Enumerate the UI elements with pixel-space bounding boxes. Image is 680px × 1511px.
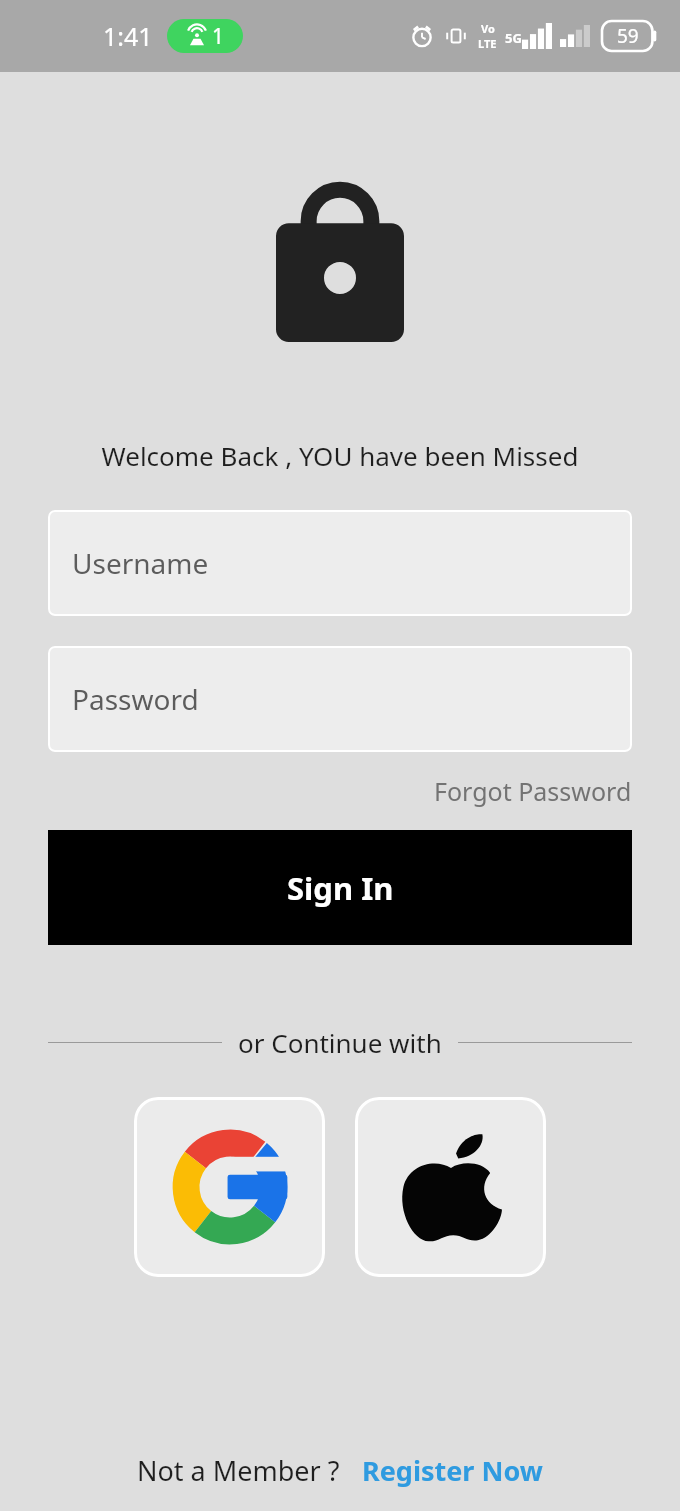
staticText: Vo <box>481 21 495 36</box>
staticText: Password <box>72 680 199 718</box>
staticText: Welcome Back , YOU have been Missed <box>0 438 680 473</box>
button[interactable]: Sign In <box>48 830 632 945</box>
button[interactable]: Register Now <box>362 1452 543 1489</box>
staticText: 59 <box>617 23 639 49</box>
staticText: LTE <box>478 36 497 51</box>
staticText: 1 <box>212 22 225 51</box>
button[interactable]: Username <box>48 510 632 616</box>
staticText: Sign In <box>287 867 394 909</box>
button[interactable]: Sign in with Apple <box>355 1097 546 1277</box>
staticText: Register Now <box>362 1452 543 1489</box>
staticText: 5G <box>505 29 522 47</box>
staticText: Username <box>72 544 209 582</box>
staticText: 1:41 <box>103 19 153 53</box>
staticText: Not a Member ? <box>137 1452 340 1489</box>
other: Lock <box>276 176 404 342</box>
button[interactable]: Password <box>48 646 632 752</box>
button[interactable]: Sign in with Google <box>134 1097 325 1277</box>
button[interactable]: Forgot Password <box>434 774 632 808</box>
staticText: or Continue with <box>238 1025 442 1060</box>
